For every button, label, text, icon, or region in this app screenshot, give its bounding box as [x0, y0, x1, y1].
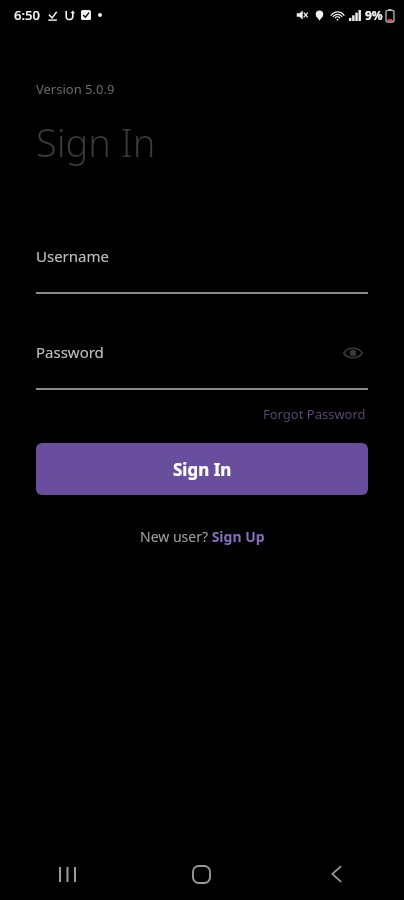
button[interactable]: Password	[36, 342, 368, 390]
button[interactable]: Forgot Password	[261, 402, 368, 426]
staticText: Sign In	[36, 116, 156, 168]
button[interactable]: Back	[269, 848, 404, 900]
button[interactable]: Show password	[338, 338, 368, 368]
staticText: 6:50	[14, 6, 40, 24]
staticText: New user? Sign Up	[140, 527, 265, 546]
staticText: Forgot Password	[263, 405, 366, 423]
staticText: Sign In	[173, 458, 232, 481]
staticText: 9%	[365, 7, 383, 23]
staticText: Version 5.0.9	[36, 80, 115, 98]
button[interactable]: Home	[134, 848, 269, 900]
button[interactable]: Username	[36, 246, 368, 294]
button[interactable]: New user? Sign Up	[136, 523, 269, 550]
staticText: Password	[36, 342, 104, 362]
button[interactable]: Sign In	[36, 443, 368, 495]
button[interactable]: Recent apps	[0, 848, 134, 900]
staticText: Username	[36, 246, 109, 266]
